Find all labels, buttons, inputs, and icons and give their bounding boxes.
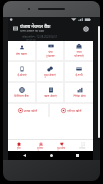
- staticText: फंड: [48, 50, 53, 54]
- button[interactable]: Home: [41, 151, 61, 160]
- staticText: पंजाब नेशनल बैंक: [20, 23, 51, 29]
- button[interactable]: Back: [14, 151, 34, 160]
- button[interactable]: निवेश सेवा: [65, 83, 93, 102]
- staticText: मुद्रा सेवाएं: [44, 73, 56, 77]
- staticText: योजनाएँ: [74, 54, 84, 58]
- staticText: निवेश सेवा: [73, 94, 86, 98]
- button[interactable]: Menu: [11, 24, 20, 33]
- button[interactable]: फंड: [37, 41, 63, 60]
- button[interactable]: Recents: [67, 151, 87, 160]
- staticText: शाखा खोजें: [24, 109, 38, 113]
- staticText: ई-सेवाएं: [17, 73, 27, 77]
- button[interactable]: एटीएम खोजें: [50, 104, 93, 117]
- button[interactable]: मुद्रा सेवा: [51, 140, 72, 151]
- staticText: अधिक: [79, 146, 86, 150]
- staticText: सुरक्षित सत्र: [26, 38, 36, 41]
- staticText: जमा: [76, 50, 82, 54]
- button[interactable]: अंतिम लॉगिन : 12-08-2023 04:51: [22, 35, 58, 39]
- button[interactable]: अधिक: [72, 140, 93, 151]
- button[interactable]: Settings: [81, 24, 90, 33]
- staticText: डिजिटल बैंक: [14, 94, 29, 98]
- staticText: एटीएम खोजें: [67, 109, 82, 113]
- button[interactable]: ई-सेवाएं: [8, 62, 35, 81]
- button[interactable]: सुविधा: [30, 140, 51, 151]
- button[interactable]: डिजिटल बैंक: [8, 83, 35, 102]
- staticText: ट्रांसफर: [46, 54, 55, 58]
- staticText: ऋण सेवाएं: [44, 94, 57, 98]
- staticText: सुविधा: [37, 146, 44, 150]
- staticText: होम: [17, 146, 21, 150]
- staticText: भारत सरकार का उद्यम: [20, 29, 45, 33]
- button[interactable]: ई-रुपी: [65, 62, 93, 81]
- staticText: मेरा खाता: [16, 52, 27, 56]
- staticText: अंतिम लॉगिन : 12-08-2023 04:51: [22, 35, 58, 39]
- button[interactable]: होम: [8, 140, 30, 151]
- button[interactable]: मेरा खाता: [8, 41, 35, 60]
- button[interactable]: मुद्रा सेवाएं: [37, 62, 63, 81]
- staticText: मुद्रा सेवा: [57, 146, 66, 150]
- button[interactable]: ऋण सेवाएं: [37, 83, 63, 102]
- staticText: ई-रुपी: [75, 73, 83, 77]
- button[interactable]: जमा: [65, 41, 93, 60]
- button[interactable]: शाखा खोजें: [8, 104, 48, 117]
